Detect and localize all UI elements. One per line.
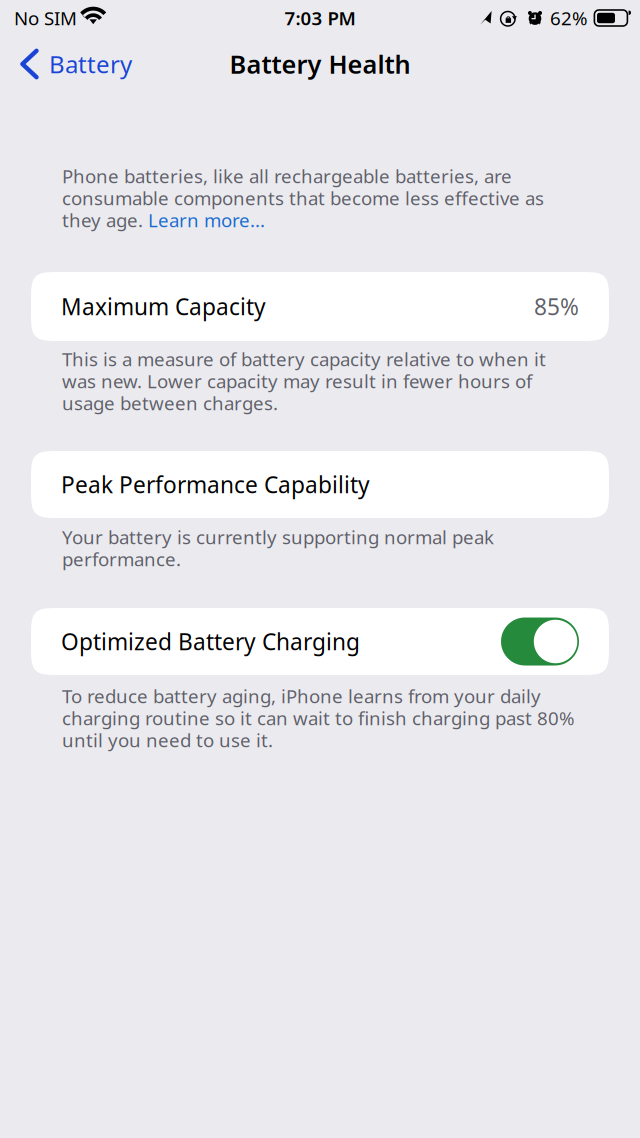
button[interactable]: Maximum Capacity [31,272,609,341]
staticText: Learn more... [148,208,265,232]
staticText: Peak Performance Capability [61,469,370,499]
staticText: until you need to use it. [62,728,273,752]
button[interactable]: Learn more... [148,208,265,232]
staticText: Battery Health [229,47,410,81]
button[interactable]: Optimized Battery Charging [31,608,609,675]
staticText: Battery [49,48,132,80]
staticText: Maximum Capacity [61,291,266,321]
staticText: 7:03 PM [284,6,355,30]
button[interactable]: Peak Performance Capability [31,451,609,518]
staticText: charging routine so it can wait to finis… [62,706,575,730]
button[interactable]: Battery [0,42,144,86]
staticText: 62% [550,6,588,30]
staticText: 85% [534,291,579,321]
staticText: performance. [62,547,181,571]
staticText: usage between charges. [62,391,278,415]
staticText: Phone batteries, like all rechargeable b… [62,164,512,188]
staticText: Your battery is currently supporting nor… [62,525,494,549]
staticText: they age. [62,208,148,232]
staticText: To reduce battery aging, iPhone learns f… [62,684,541,708]
staticText: consumable components that become less e… [62,186,544,210]
staticText: Optimized Battery Charging [61,626,360,656]
staticText: This is a measure of battery capacity re… [62,347,546,371]
staticText: was new. Lower capacity may result in fe… [62,369,532,393]
staticText: No SIM [14,6,77,30]
